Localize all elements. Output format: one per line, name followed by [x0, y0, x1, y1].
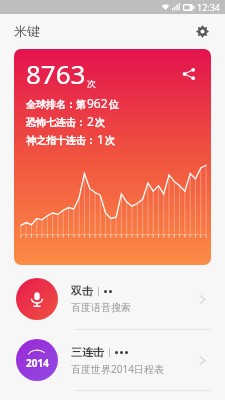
staticText: 次: [87, 78, 96, 89]
staticText: 神之指十连击：: [26, 134, 96, 147]
staticText: 次: [105, 134, 115, 147]
button[interactable]: 2014: [0, 330, 225, 390]
staticText: 百度语音搜索: [71, 301, 131, 314]
staticText: 2014: [26, 356, 49, 370]
button[interactable]: 双击: [0, 269, 225, 329]
button[interactable]: Settings: [189, 18, 215, 44]
staticText: 三连击: [71, 345, 104, 359]
button[interactable]: 8763: [14, 49, 211, 265]
staticText: 位: [109, 98, 119, 111]
staticText: 12:34: [197, 1, 221, 13]
staticText: 米键: [14, 23, 40, 39]
staticText: 恐怖七连击：: [26, 116, 86, 129]
staticText: 百度世界2014日程表: [71, 362, 164, 376]
staticText: 2: [87, 113, 94, 129]
staticText: 8763: [26, 56, 86, 91]
staticText: 1: [97, 131, 104, 147]
staticText: 962: [87, 95, 108, 111]
staticText: 双击: [71, 284, 93, 298]
button[interactable]: Share: [177, 62, 201, 86]
staticText: 全球排名：第: [26, 98, 86, 111]
staticText: 次: [95, 116, 105, 129]
